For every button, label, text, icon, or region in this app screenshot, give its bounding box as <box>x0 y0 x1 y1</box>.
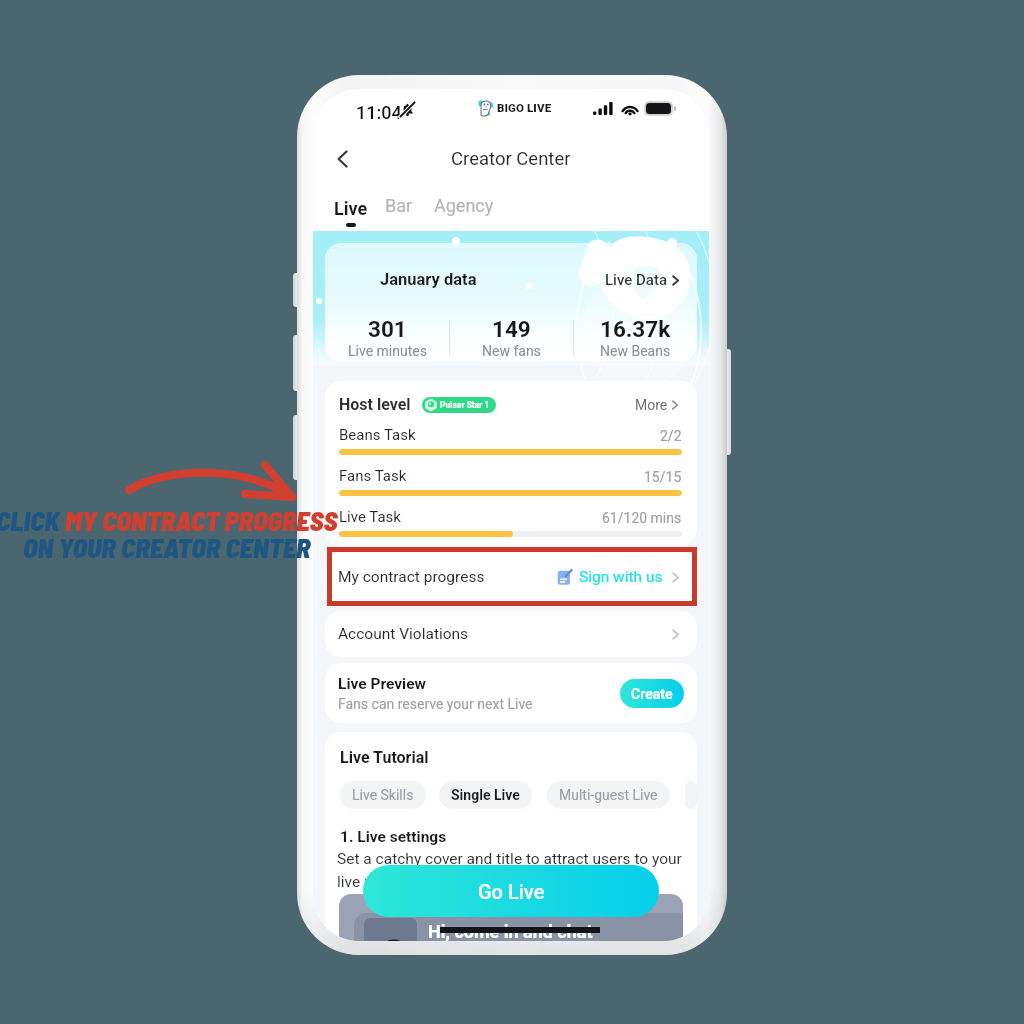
staticText: Live Preview <box>338 675 426 693</box>
staticText: BIGO LIVE <box>497 101 552 114</box>
staticText: 301 <box>368 316 407 342</box>
staticText: Agency <box>434 195 494 216</box>
staticText: 61/120 mins <box>602 510 682 526</box>
staticText: Single Live <box>451 787 520 803</box>
staticText: Hi, come in and chat <box>428 921 593 941</box>
button[interactable]: More <box>635 397 682 413</box>
staticText: Live minutes <box>348 343 427 359</box>
staticText: Pulsar Star 1 <box>440 400 490 410</box>
button[interactable]: Live <box>330 194 372 223</box>
staticText: 16.37k <box>600 316 671 342</box>
staticText: Account Violations <box>338 625 469 643</box>
staticText: New Beans <box>600 343 671 359</box>
staticText: Live Skills <box>352 787 414 803</box>
button[interactable]: Agency <box>430 198 498 219</box>
staticText: 1. Live settings <box>340 828 447 846</box>
button[interactable]: Back <box>323 139 363 179</box>
button[interactable]: Single Live <box>439 781 532 809</box>
button[interactable]: Bar <box>381 198 417 219</box>
staticText: Live Task <box>339 508 401 526</box>
staticText: Go Live <box>478 880 545 903</box>
staticText: Create <box>631 686 673 702</box>
button[interactable]: My contract progress <box>325 552 697 602</box>
staticText: My contract progress <box>338 568 485 586</box>
button[interactable]: Account Violations <box>325 611 697 657</box>
staticText: Host level <box>339 395 411 414</box>
button[interactable]: Create <box>620 679 684 708</box>
staticText: January data <box>380 270 477 289</box>
staticText: 15/15 <box>644 469 682 485</box>
staticText: More <box>635 397 668 413</box>
staticText: CLICK <box>0 504 65 536</box>
staticText: Set a catchy cover and title to attract … <box>337 850 695 891</box>
staticText: Live <box>334 198 368 219</box>
button[interactable]: Multi-guest Live <box>547 781 670 809</box>
button[interactable]: Live Data <box>605 271 683 289</box>
button[interactable]: Live Skills <box>340 781 426 809</box>
staticText: 149 <box>492 316 531 342</box>
staticText: 2/2 <box>660 428 682 444</box>
staticText: Sign with us <box>579 568 663 586</box>
staticText: Fans Task <box>339 467 407 485</box>
staticText: MY CONTRACT PROGRESS <box>65 504 338 536</box>
button[interactable]: PK <box>685 781 697 809</box>
staticText: Multi-guest Live <box>559 787 658 803</box>
staticText: Bar <box>385 195 413 216</box>
staticText: ON YOUR CREATOR CENTER <box>23 531 311 563</box>
staticText: New fans <box>482 343 541 359</box>
staticText: Live Tutorial <box>340 748 429 767</box>
staticText: Beans Task <box>339 426 416 444</box>
staticText: 11:04 <box>356 102 402 123</box>
button[interactable]: Go Live <box>363 865 659 917</box>
staticText: Creator Center <box>451 148 571 170</box>
staticText: Live Data <box>605 271 667 289</box>
staticText: Fans can reserve your next Live <box>338 696 533 712</box>
